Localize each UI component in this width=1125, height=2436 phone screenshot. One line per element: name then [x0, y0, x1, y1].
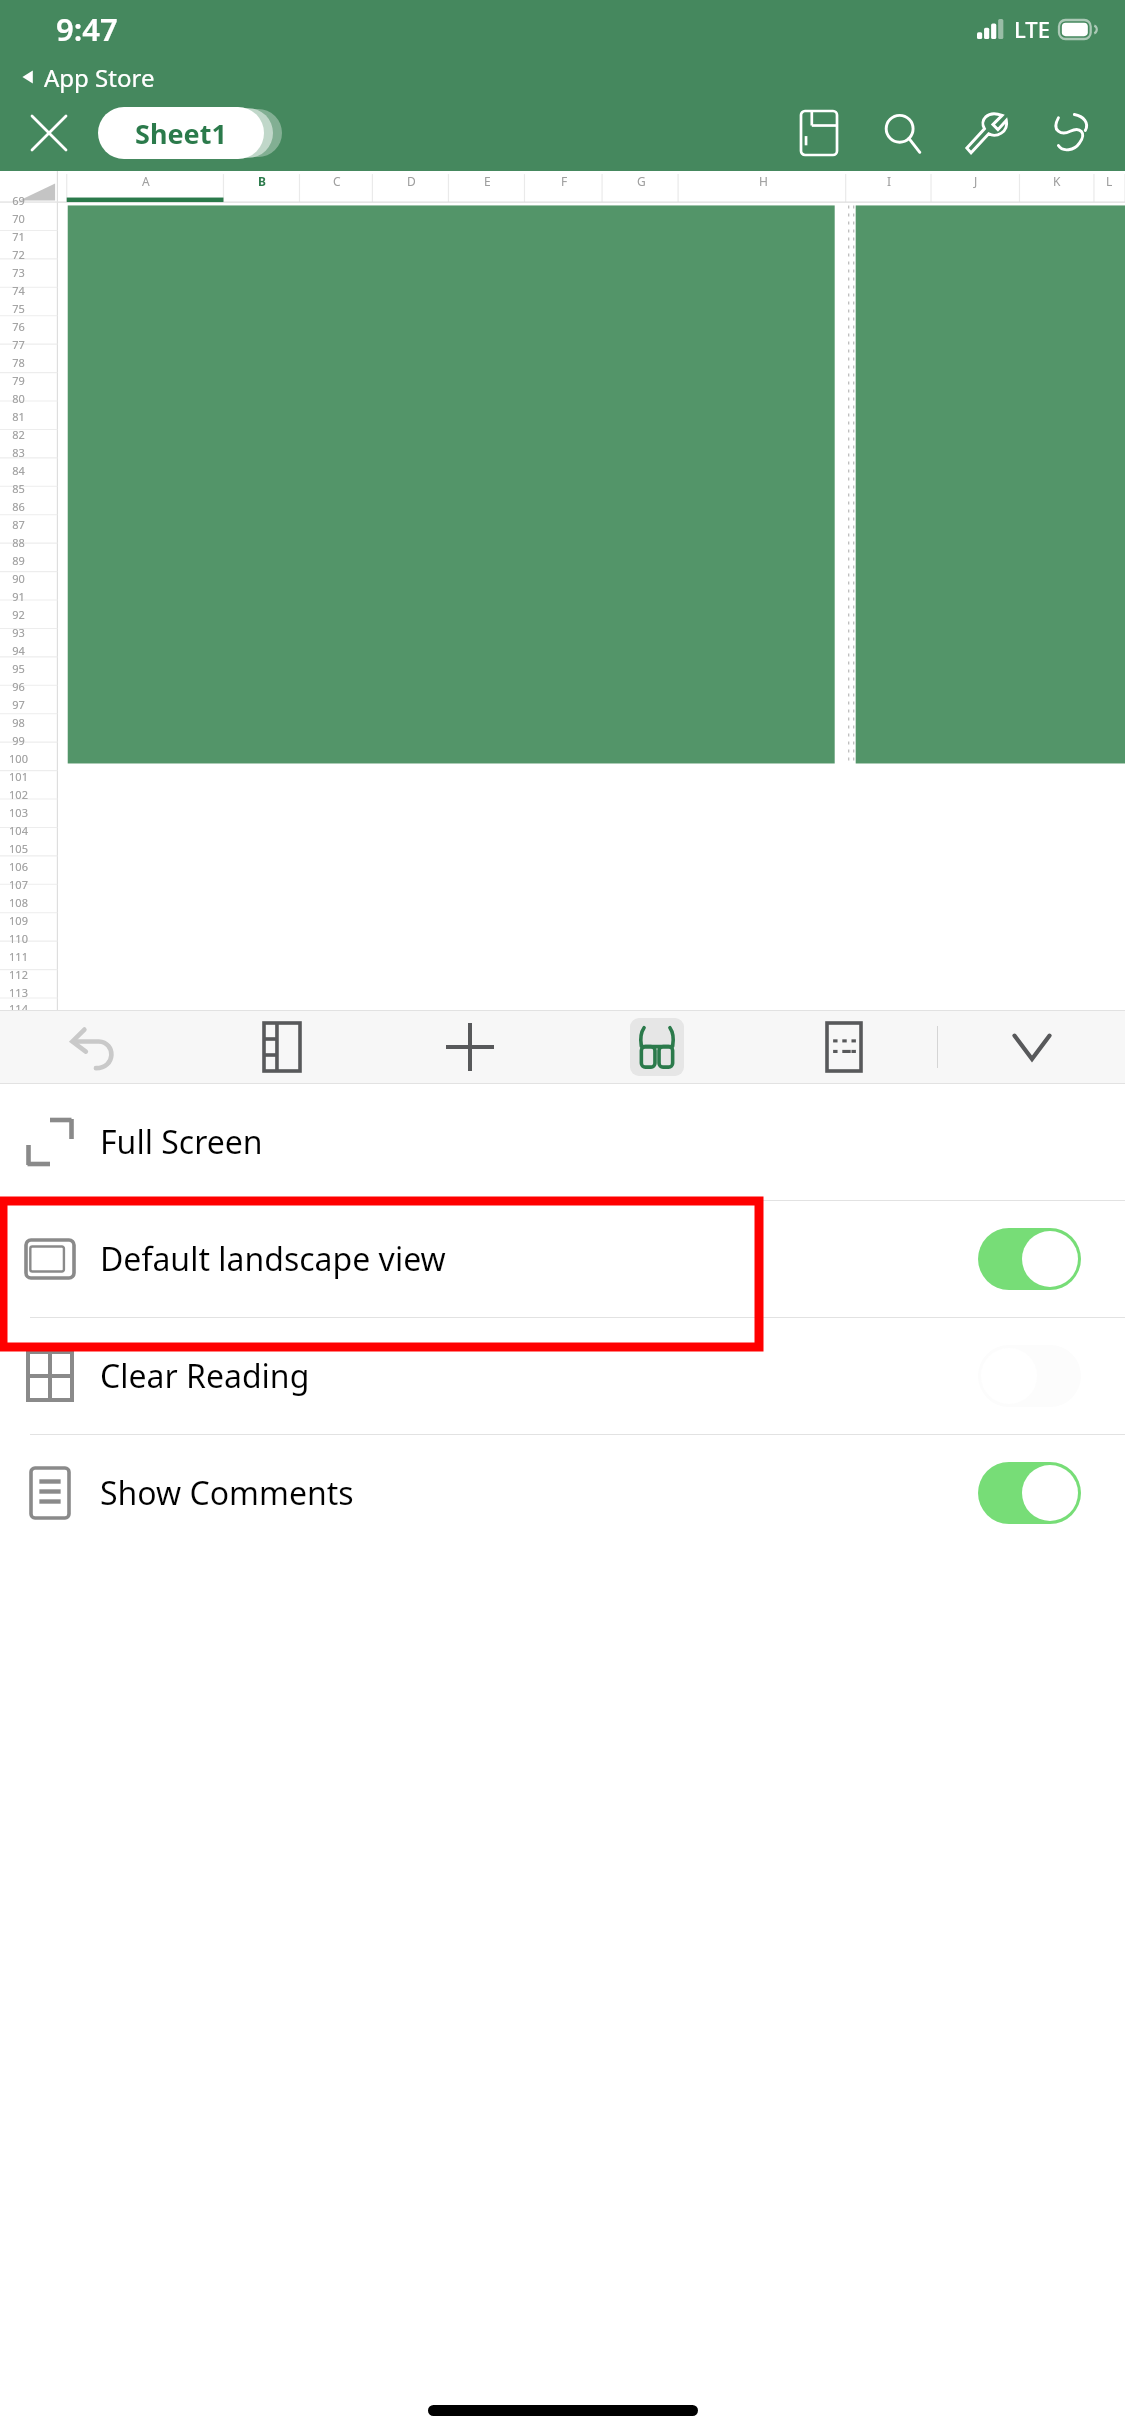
staticText: Clear Reading: [100, 1354, 310, 1398]
button[interactable]: Search: [861, 96, 945, 169]
staticText: 95: [12, 661, 25, 676]
button[interactable]: Close: [0, 96, 98, 169]
staticText: I: [887, 173, 892, 189]
button[interactable]: Insert: [376, 1011, 563, 1083]
staticText: LTE: [1014, 14, 1050, 44]
button[interactable]: Keyboard: [750, 1011, 937, 1083]
staticText: 73: [12, 265, 25, 280]
staticText: 88: [12, 535, 25, 550]
staticText: 87: [12, 517, 25, 532]
staticText: F: [561, 173, 568, 189]
staticText: Full Screen: [100, 1120, 263, 1164]
button[interactable]: A: [67, 171, 224, 191]
button[interactable]: Show Comments: [978, 1462, 1081, 1524]
button[interactable]: Reading mode: [630, 1018, 684, 1076]
staticText: 109: [9, 913, 28, 928]
staticText: 78: [12, 355, 25, 370]
staticText: 98: [12, 715, 25, 730]
staticText: Show Comments: [100, 1471, 354, 1515]
staticText: Default landscape view: [100, 1237, 446, 1281]
button[interactable]: Draw: [1029, 96, 1113, 169]
staticText: G: [637, 173, 646, 189]
staticText: L: [1106, 173, 1113, 189]
staticText: 85: [12, 481, 25, 496]
staticText: 76: [12, 319, 25, 334]
staticText: 69: [12, 193, 25, 208]
staticText: 82: [12, 427, 25, 442]
staticText: 71: [12, 229, 25, 244]
staticText: 77: [12, 337, 25, 352]
staticText: D: [407, 173, 416, 189]
staticText: H: [759, 173, 768, 189]
staticText: 99: [12, 733, 25, 748]
button[interactable]: C: [300, 171, 373, 191]
button[interactable]: Freeze panes: [188, 1011, 376, 1083]
staticText: 91: [12, 589, 25, 604]
button[interactable]: Default landscape view: [978, 1228, 1081, 1290]
staticText: 112: [9, 967, 28, 982]
button[interactable]: G: [603, 171, 679, 191]
staticText: A: [142, 173, 150, 189]
staticText: 101: [9, 769, 28, 784]
button[interactable]: H: [679, 171, 847, 191]
staticText: 80: [12, 391, 25, 406]
staticText: 72: [12, 247, 25, 262]
staticText: 83: [12, 445, 25, 460]
staticText: 93: [12, 625, 25, 640]
staticText: 102: [9, 787, 28, 802]
button[interactable]: Full Screen: [0, 1084, 1125, 1200]
button[interactable]: Collapse: [938, 1011, 1125, 1083]
staticText: C: [333, 173, 341, 189]
staticText: 94: [12, 643, 25, 658]
staticText: 100: [9, 751, 28, 766]
staticText: 108: [9, 895, 28, 910]
staticText: 74: [12, 283, 25, 298]
staticText: E: [484, 173, 491, 189]
button[interactable]: K: [1020, 171, 1094, 191]
button[interactable]: Back to App Store: [18, 58, 155, 96]
staticText: 9:47: [56, 8, 118, 50]
staticText: 89: [12, 553, 25, 568]
staticText: 96: [12, 679, 25, 694]
staticText: App Store: [44, 61, 155, 94]
staticText: 70: [12, 211, 25, 226]
button[interactable]: L: [1094, 171, 1125, 191]
button[interactable]: J: [932, 171, 1020, 191]
staticText: 92: [12, 607, 25, 622]
button[interactable]: I: [847, 171, 932, 191]
staticText: 97: [12, 697, 25, 712]
button[interactable]: D: [373, 171, 449, 191]
staticText: 90: [12, 571, 25, 586]
button[interactable]: Sheet1: [98, 105, 264, 161]
staticText: 104: [9, 823, 28, 838]
button[interactable]: B: [224, 171, 300, 191]
staticText: 103: [9, 805, 28, 820]
staticText: 107: [9, 877, 28, 892]
staticText: 110: [9, 931, 28, 946]
button[interactable]: Show Comments: [0, 1435, 1125, 1551]
staticText: 84: [12, 463, 25, 478]
staticText: 114: [9, 1001, 28, 1010]
button[interactable]: E: [449, 171, 525, 191]
staticText: 75: [12, 301, 25, 316]
staticText: J: [974, 173, 978, 189]
button[interactable]: Clear Reading: [0, 1318, 1125, 1434]
button[interactable]: Tools: [945, 96, 1029, 169]
staticText: 81: [12, 409, 25, 424]
staticText: B: [258, 173, 266, 189]
button[interactable]: Default landscape view: [0, 1201, 1125, 1317]
staticText: 79: [12, 373, 25, 388]
staticText: 111: [9, 949, 28, 964]
staticText: 86: [12, 499, 25, 514]
staticText: K: [1053, 173, 1061, 189]
staticText: 106: [9, 859, 28, 874]
button[interactable]: F: [525, 171, 603, 191]
button[interactable]: Save: [777, 96, 861, 169]
staticText: Sheet1: [135, 115, 227, 152]
button[interactable]: Undo: [0, 1011, 188, 1083]
staticText: 105: [9, 841, 28, 856]
staticText: 113: [9, 985, 28, 1000]
